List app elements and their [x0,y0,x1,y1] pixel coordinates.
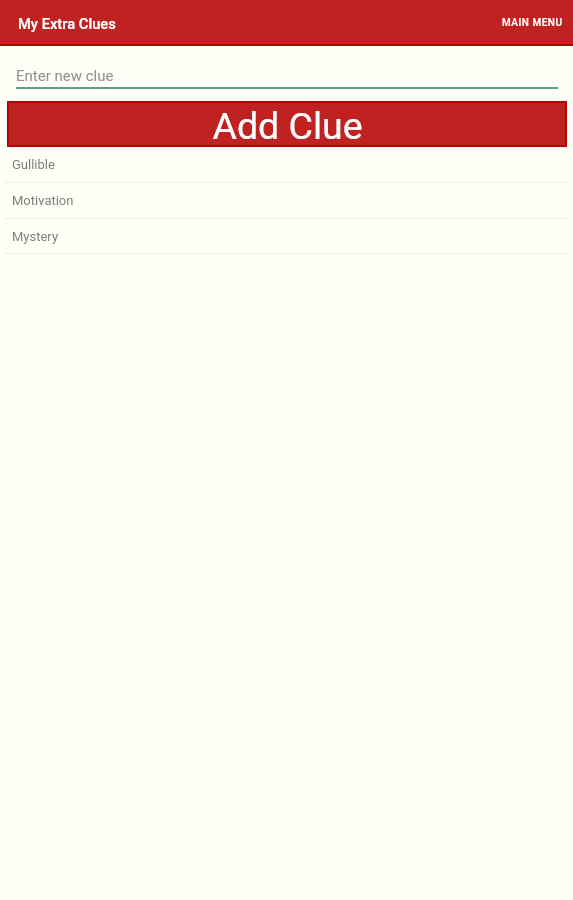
staticText: Mystery [12,229,59,244]
button[interactable]: Enter new clue [16,46,558,89]
button[interactable]: MAIN MENU [486,0,573,46]
staticText: Gullible [12,157,55,172]
staticText: Add Clue [212,104,363,148]
button[interactable]: Gullible [0,147,573,182]
staticText: MAIN MENU [502,17,563,29]
button[interactable]: Mystery [0,219,573,253]
staticText: Motivation [12,193,74,208]
button[interactable]: Add Clue [7,101,567,147]
staticText: My Extra Clues [18,15,116,32]
button[interactable]: Motivation [0,183,573,218]
staticText: Enter new clue [16,67,114,85]
